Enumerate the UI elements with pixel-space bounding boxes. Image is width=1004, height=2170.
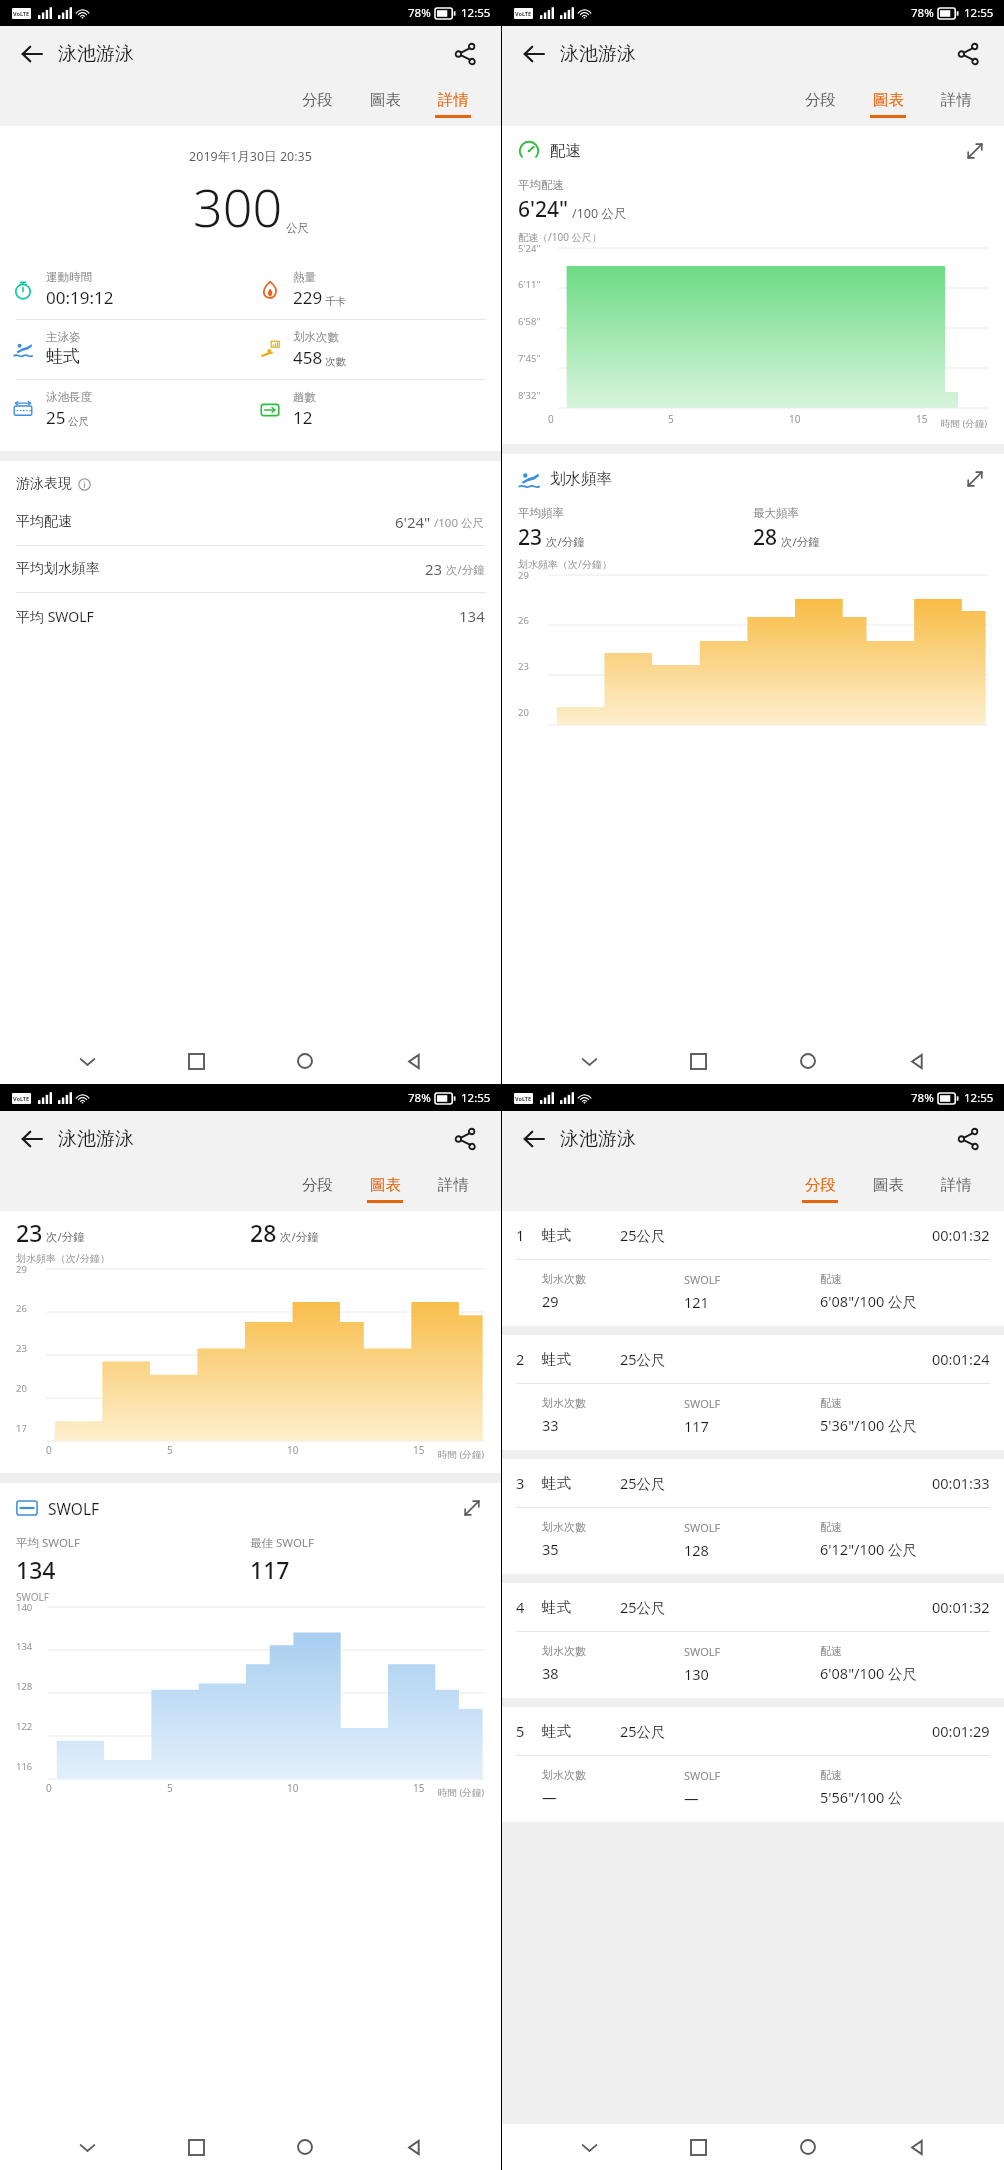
button[interactable]: 3 — [502, 1459, 1004, 1574]
button[interactable]: Hide keyboard — [65, 1039, 109, 1083]
button[interactable]: 詳情 — [922, 1175, 990, 1203]
button[interactable]: 平均划水頻率 — [0, 546, 501, 592]
button[interactable]: 運動時間 — [6, 260, 253, 319]
button[interactable]: 泳池長度 — [6, 380, 253, 439]
button[interactable]: Share — [445, 1119, 485, 1159]
button[interactable]: Expand stroke rate chart — [962, 466, 988, 492]
button[interactable]: 分段 — [786, 1175, 854, 1203]
staticText: 划水頻率（次/分鐘） — [518, 557, 612, 571]
staticText: 最大頻率 — [753, 506, 799, 520]
button[interactable]: Back — [392, 2125, 436, 2169]
staticText: 00:01:24 — [932, 1349, 990, 1369]
staticText: 圖表 — [370, 90, 401, 110]
staticText: 次/分鐘 — [781, 534, 820, 550]
staticText: 29 — [542, 1291, 559, 1311]
button[interactable]: Hide keyboard — [567, 1039, 611, 1083]
staticText: 12:55 — [461, 5, 491, 21]
staticText: 6'24" — [395, 512, 431, 532]
staticText: 詳情 — [438, 90, 469, 110]
button[interactable]: 2 — [502, 1335, 1004, 1450]
button[interactable]: 詳情 — [922, 90, 990, 118]
staticText: 泳池游泳 — [560, 42, 636, 66]
button[interactable]: Home — [786, 1039, 830, 1083]
button[interactable]: Share — [445, 34, 485, 74]
staticText: 23 — [16, 1217, 43, 1248]
staticText: 次數 — [325, 355, 346, 368]
button[interactable]: Recents — [676, 2125, 720, 2169]
staticText: 詳情 — [438, 1175, 469, 1195]
staticText: 游泳表現 — [16, 475, 72, 493]
staticText: 蛙式 — [542, 1350, 571, 1368]
staticText: 38 — [542, 1663, 559, 1683]
staticText: 平均配速 — [16, 513, 72, 531]
button[interactable]: 趟數 — [253, 380, 501, 439]
staticText: VoLTE — [13, 1095, 30, 1102]
button[interactable]: Back — [895, 2125, 939, 2169]
button[interactable]: 4 — [502, 1583, 1004, 1698]
button[interactable]: Share — [948, 1119, 988, 1159]
button[interactable]: Hide keyboard — [65, 2125, 109, 2169]
button[interactable]: 1 — [502, 1211, 1004, 1326]
button[interactable]: Recents — [174, 2125, 218, 2169]
staticText: 平均 SWOLF — [16, 607, 94, 626]
button[interactable]: Recents — [174, 1039, 218, 1083]
button[interactable]: 分段 — [786, 90, 854, 118]
button[interactable]: Back — [895, 1039, 939, 1083]
button[interactable]: Back — [392, 1039, 436, 1083]
staticText: — — [542, 1787, 557, 1807]
staticText: 00:01:29 — [932, 1721, 990, 1741]
staticText: 12:55 — [461, 1090, 491, 1106]
button[interactable]: 圖表 — [854, 90, 922, 118]
button[interactable]: Back — [12, 34, 52, 74]
staticText: /100 公尺 — [434, 515, 485, 531]
button[interactable]: Home — [283, 1039, 327, 1083]
button[interactable]: 詳情 — [419, 1175, 487, 1203]
button[interactable]: Home — [786, 2125, 830, 2169]
button[interactable]: 熱量 — [253, 260, 501, 319]
button[interactable]: 分段 — [283, 90, 351, 118]
staticText: 25 — [46, 406, 66, 429]
button[interactable]: Back — [514, 34, 554, 74]
staticText: 12:55 — [964, 5, 994, 21]
staticText: 配速 — [550, 141, 581, 161]
button[interactable]: 主泳姿 — [6, 320, 253, 377]
button[interactable]: 詳情 — [419, 90, 487, 118]
button[interactable]: Expand pace chart — [962, 138, 988, 164]
button[interactable]: Home — [283, 2125, 327, 2169]
button[interactable]: 平均配速 — [0, 499, 501, 545]
button[interactable]: 5 — [502, 1707, 1004, 1822]
button[interactable]: Recents — [676, 1039, 720, 1083]
staticText: 00:01:32 — [932, 1597, 990, 1617]
button[interactable]: 圖表 — [854, 1175, 922, 1203]
staticText: 26 — [16, 1302, 27, 1315]
staticText: 25公尺 — [620, 1597, 666, 1617]
staticText: 29 — [518, 569, 529, 582]
staticText: 圖表 — [370, 1175, 401, 1195]
staticText: 分段 — [805, 1175, 836, 1195]
staticText: 15 — [916, 412, 928, 426]
staticText: 圖表 — [873, 1175, 904, 1195]
staticText: 121 — [684, 1292, 709, 1312]
button[interactable]: Back — [514, 1119, 554, 1159]
button[interactable]: Share — [948, 34, 988, 74]
button[interactable]: Expand SWOLF chart — [459, 1495, 485, 1521]
staticText: 10 — [287, 1443, 299, 1457]
button[interactable]: Hide keyboard — [567, 2125, 611, 2169]
staticText: 蛙式 — [46, 346, 80, 367]
staticText: SWOLF — [48, 1498, 100, 1519]
button[interactable]: 圖表 — [351, 1175, 419, 1203]
button[interactable]: 分段 — [283, 1175, 351, 1203]
staticText: 划水次數 — [293, 330, 339, 344]
staticText: 229 — [293, 286, 323, 309]
staticText: SWOLF — [684, 1396, 721, 1411]
staticText: 10 — [789, 412, 801, 426]
staticText: 23 — [16, 1342, 27, 1355]
staticText: 300 — [193, 171, 283, 242]
button[interactable]: Back — [12, 1119, 52, 1159]
staticText: 次/分鐘 — [46, 1229, 85, 1245]
staticText: 蛙式 — [542, 1474, 571, 1492]
button[interactable]: 划水次數 — [253, 320, 501, 379]
button[interactable]: 平均 SWOLF — [0, 593, 501, 639]
button[interactable]: 圖表 — [351, 90, 419, 118]
staticText: 28 — [753, 523, 778, 552]
